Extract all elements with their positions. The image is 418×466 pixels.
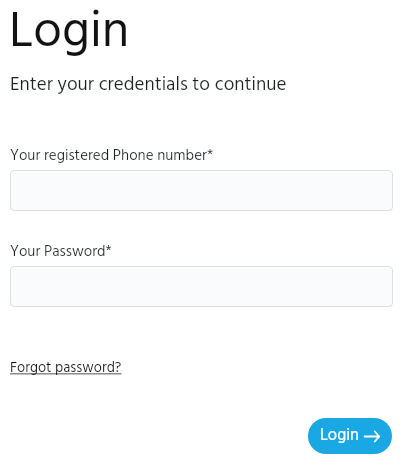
staticText: Your Password* <box>10 240 112 264</box>
button[interactable]: Login <box>308 418 392 454</box>
staticText: Login <box>320 423 359 449</box>
staticText: Forgot password? <box>10 357 122 380</box>
button[interactable]: Your registered Phone number <box>10 170 393 211</box>
button[interactable]: Your Password <box>10 266 393 307</box>
staticText: Your registered Phone number* <box>10 144 214 168</box>
staticText: Login <box>9 0 130 74</box>
staticText: Enter your credentials to continue <box>10 70 287 100</box>
button[interactable]: Forgot password? <box>10 357 122 380</box>
